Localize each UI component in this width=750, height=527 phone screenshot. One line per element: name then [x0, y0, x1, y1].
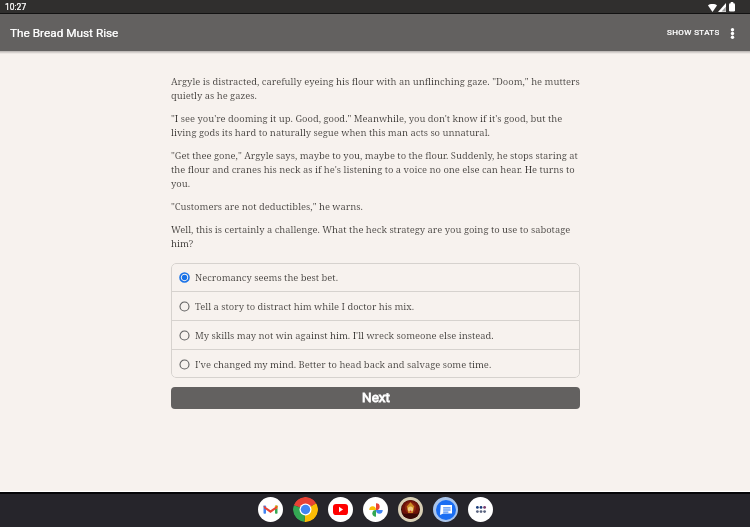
staticText: Tell a story to distract him while I doc…: [195, 300, 415, 313]
button[interactable]: My skills may not win against him. I'll …: [171, 321, 580, 349]
button[interactable]: Photos: [363, 497, 388, 522]
staticText: I've changed my mind. Better to head bac…: [195, 358, 492, 371]
staticText: Next: [362, 389, 390, 405]
button[interactable]: Next: [171, 387, 580, 409]
staticText: SHOW STATS: [667, 28, 720, 37]
button[interactable]: All apps: [468, 497, 493, 522]
staticText: "Customers are not deductibles," he warn…: [171, 200, 363, 213]
staticText: 10:27: [5, 2, 27, 12]
button[interactable]: More options: [720, 21, 744, 45]
staticText: Argyle is distracted, carefully eyeing h…: [171, 75, 580, 102]
staticText: Well, this is certainly a challenge. Wha…: [171, 223, 580, 250]
staticText: "I see you're dooming it up. Good, good.…: [171, 112, 580, 139]
staticText: My skills may not win against him. I'll …: [195, 329, 494, 342]
button[interactable]: Necromancy seems the best bet.: [171, 263, 580, 291]
button[interactable]: YouTube: [328, 497, 353, 522]
staticText: "Get thee gone," Argyle says, maybe to y…: [171, 149, 580, 190]
button[interactable]: Messages: [433, 497, 458, 522]
staticText: Necromancy seems the best bet.: [195, 271, 339, 284]
button[interactable]: Tell a story to distract him while I doc…: [171, 292, 580, 320]
button[interactable]: Game: [398, 497, 423, 522]
button[interactable]: SHOW STATS: [659, 19, 720, 46]
button[interactable]: I've changed my mind. Better to head bac…: [171, 350, 580, 378]
button[interactable]: Gmail: [258, 497, 283, 522]
button[interactable]: Chrome: [293, 497, 318, 522]
staticText: The Bread Must Rise: [10, 26, 119, 40]
